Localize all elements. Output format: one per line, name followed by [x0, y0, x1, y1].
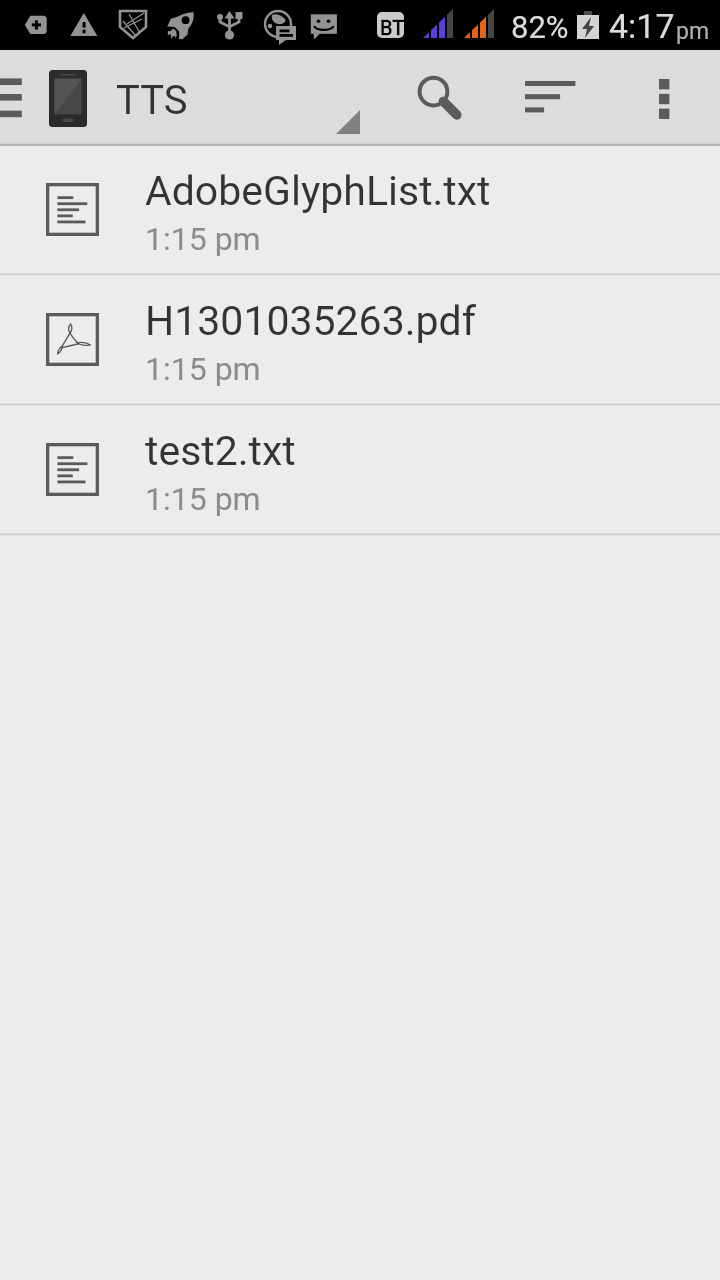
staticText: 1:15 pm	[145, 350, 261, 388]
staticText: BT	[380, 16, 405, 39]
staticText: 4:17	[609, 6, 675, 46]
staticText: test2.txt	[145, 427, 296, 475]
button[interactable]: AdobeGlyphList.txt	[0, 146, 720, 273]
staticText: H1301035263.pdf	[145, 297, 476, 345]
button[interactable]: test2.txt	[0, 406, 720, 533]
button[interactable]: Sort	[510, 66, 576, 130]
staticText: AdobeGlyphList.txt	[145, 167, 491, 215]
button[interactable]: More options	[632, 66, 696, 130]
button[interactable]: Open navigation drawer	[0, 50, 46, 146]
staticText: 1:15 pm	[145, 220, 261, 258]
staticText: 1:15 pm	[145, 480, 261, 518]
button[interactable]: H1301035263.pdf	[0, 276, 720, 403]
staticText: pm	[676, 18, 710, 45]
staticText: TTS	[116, 77, 188, 124]
button[interactable]: Search	[396, 66, 464, 130]
staticText: 82%	[511, 9, 569, 45]
